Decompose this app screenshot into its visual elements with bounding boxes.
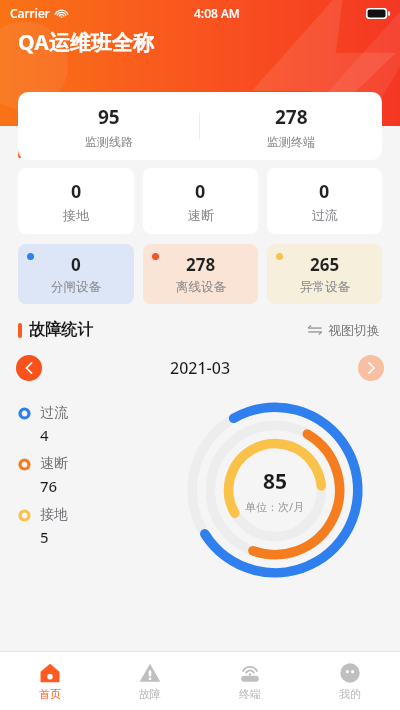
button[interactable]: 278 bbox=[143, 244, 258, 304]
staticText: 离线设备 bbox=[176, 279, 226, 295]
button[interactable]: 视图切换 bbox=[303, 318, 384, 342]
staticText: 0 bbox=[71, 253, 81, 276]
staticText: 首页 bbox=[39, 687, 61, 701]
staticText: 4:08 AM bbox=[194, 5, 240, 21]
staticText: 接地 bbox=[63, 207, 89, 223]
staticText: 4 bbox=[40, 425, 49, 445]
staticText: 终端 bbox=[239, 687, 261, 701]
staticText: 265 bbox=[310, 253, 340, 276]
staticText: QA运维班全称 bbox=[18, 28, 154, 57]
staticText: 85 bbox=[263, 467, 288, 496]
staticText: 故障统计 bbox=[29, 320, 93, 340]
staticText: 5 bbox=[40, 527, 49, 547]
staticText: 过流 bbox=[40, 404, 68, 422]
staticText: 监测线路 bbox=[85, 134, 133, 149]
staticText: 0 bbox=[71, 179, 82, 204]
button[interactable]: 我的 bbox=[300, 652, 400, 710]
button[interactable]: 0 bbox=[18, 244, 134, 304]
staticText: 异常设备 bbox=[300, 279, 350, 295]
button[interactable]: 终端 bbox=[200, 652, 300, 710]
staticText: 2021-03 bbox=[170, 357, 231, 379]
staticText: 速断 bbox=[40, 455, 68, 473]
button[interactable]: Previous month bbox=[16, 355, 42, 381]
staticText: 最新监测故障 bbox=[29, 140, 125, 160]
staticText: 单位：次/月 bbox=[245, 499, 305, 514]
staticText: 分闸设备 bbox=[51, 279, 101, 295]
staticText: 0 bbox=[195, 179, 206, 204]
button[interactable]: 0 bbox=[267, 168, 382, 234]
staticText: 我的 bbox=[339, 687, 361, 701]
staticText: 95 bbox=[98, 104, 120, 130]
staticText: 过流 bbox=[312, 207, 338, 223]
staticText: 0 bbox=[319, 179, 330, 204]
staticText: 278 bbox=[186, 253, 216, 276]
staticText: Carrier bbox=[10, 5, 50, 21]
staticText: 278 bbox=[275, 104, 308, 130]
staticText: 视图切换 bbox=[328, 322, 380, 338]
button[interactable]: 265 bbox=[267, 244, 382, 304]
button[interactable]: Next month bbox=[358, 355, 384, 381]
staticText: 监测终端 bbox=[267, 134, 315, 149]
staticText: 接地 bbox=[40, 506, 68, 524]
button[interactable]: 0 bbox=[18, 168, 134, 234]
staticText: 76 bbox=[40, 476, 58, 496]
button[interactable]: 95 bbox=[18, 92, 382, 160]
staticText: 故障 bbox=[139, 687, 161, 701]
button[interactable]: 故障 bbox=[100, 652, 200, 710]
staticText: 速断 bbox=[188, 207, 214, 223]
button[interactable]: 0 bbox=[143, 168, 258, 234]
button[interactable]: 首页 bbox=[0, 652, 100, 710]
